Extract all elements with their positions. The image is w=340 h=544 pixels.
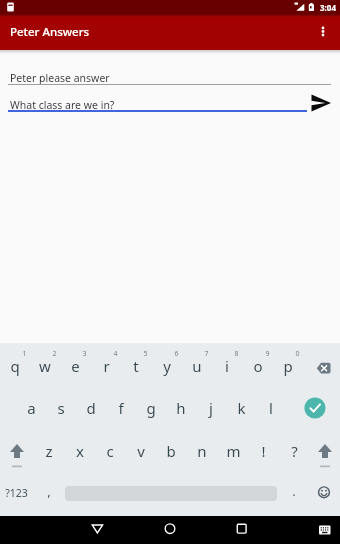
button[interactable]: v [126,430,156,472]
button[interactable]: ! [248,430,278,472]
button[interactable]: u [182,345,212,386]
button[interactable]: b [156,430,186,472]
button[interactable] [156,516,184,544]
staticText: 3:04 [320,2,336,13]
button[interactable] [312,480,336,504]
staticText: e [71,356,80,376]
staticText: c [106,441,114,461]
button[interactable]: r [91,345,121,386]
staticText: ! [261,441,266,461]
button[interactable]: n [187,430,217,472]
button[interactable]: i [212,345,242,386]
staticText: 7 [204,349,209,359]
staticText: , [47,482,51,500]
button[interactable]: Peter please answer [8,66,332,88]
button[interactable]: e [60,345,90,386]
staticText: 1 [22,349,27,359]
staticText: p [283,356,293,376]
button[interactable]: g [136,387,166,429]
staticText: t [133,356,139,376]
staticText: r [103,356,110,376]
staticText: l [269,398,273,418]
staticText: 3 [82,349,87,359]
staticText: What class are we in? [10,98,115,112]
staticText: w [39,356,51,376]
button[interactable]: y [152,345,182,386]
staticText: Peter please answer [10,71,110,85]
staticText: . [292,482,296,500]
button[interactable]: ? [279,430,309,472]
button[interactable]: k [226,387,256,429]
button[interactable]: d [76,387,106,429]
button[interactable] [310,516,340,544]
button[interactable] [306,345,340,386]
staticText: a [27,398,36,418]
button[interactable]: j [196,387,226,429]
staticText: i [225,356,229,376]
button[interactable]: z [34,430,64,472]
staticText: m [226,441,241,461]
button[interactable]: c [95,430,125,472]
button[interactable]: ?123 [2,481,30,505]
staticText: 9 [265,349,270,359]
button[interactable]: h [166,387,196,429]
staticText: j [209,398,213,418]
button[interactable] [308,92,334,114]
staticText: ? [291,441,298,461]
button[interactable]: f [106,387,136,429]
button[interactable]: . [286,479,302,503]
button[interactable] [83,516,111,544]
button[interactable]: p [273,345,303,386]
staticText: n [197,441,207,461]
staticText: 6 [174,349,179,359]
staticText: b [166,441,176,461]
staticText: f [118,398,124,418]
button[interactable]: m [218,430,248,472]
staticText: 0 [295,349,300,359]
staticText: u [192,356,202,376]
staticText: 4 [113,349,118,359]
staticText: 5 [143,349,148,359]
staticText: 8 [234,349,239,359]
staticText: g [146,398,156,418]
button[interactable] [1,437,33,471]
button[interactable]: , [41,479,57,503]
button[interactable]: x [65,430,95,472]
button[interactable]: o [243,345,273,386]
staticText: h [176,398,186,418]
staticText: s [57,398,65,418]
button[interactable]: t [121,345,151,386]
button[interactable] [228,516,256,544]
staticText: x [76,441,84,461]
button[interactable] [312,14,340,50]
button[interactable] [300,393,330,423]
button[interactable]: q [0,345,30,386]
staticText: o [253,356,263,376]
staticText: y [163,356,171,376]
button[interactable]: l [256,387,286,429]
staticText: z [45,441,53,461]
staticText: Peter Answers [10,24,90,40]
staticText: v [137,441,145,461]
staticText: k [237,398,246,418]
staticText: 2 [52,349,57,359]
button[interactable]: a [16,387,46,429]
staticText: q [10,356,20,376]
button[interactable]: s [46,387,76,429]
button[interactable] [309,437,340,471]
staticText: ?123 [5,486,28,500]
button[interactable]: w [30,345,60,386]
button[interactable]: What class are we in? [8,93,308,112]
staticText: d [86,398,96,418]
